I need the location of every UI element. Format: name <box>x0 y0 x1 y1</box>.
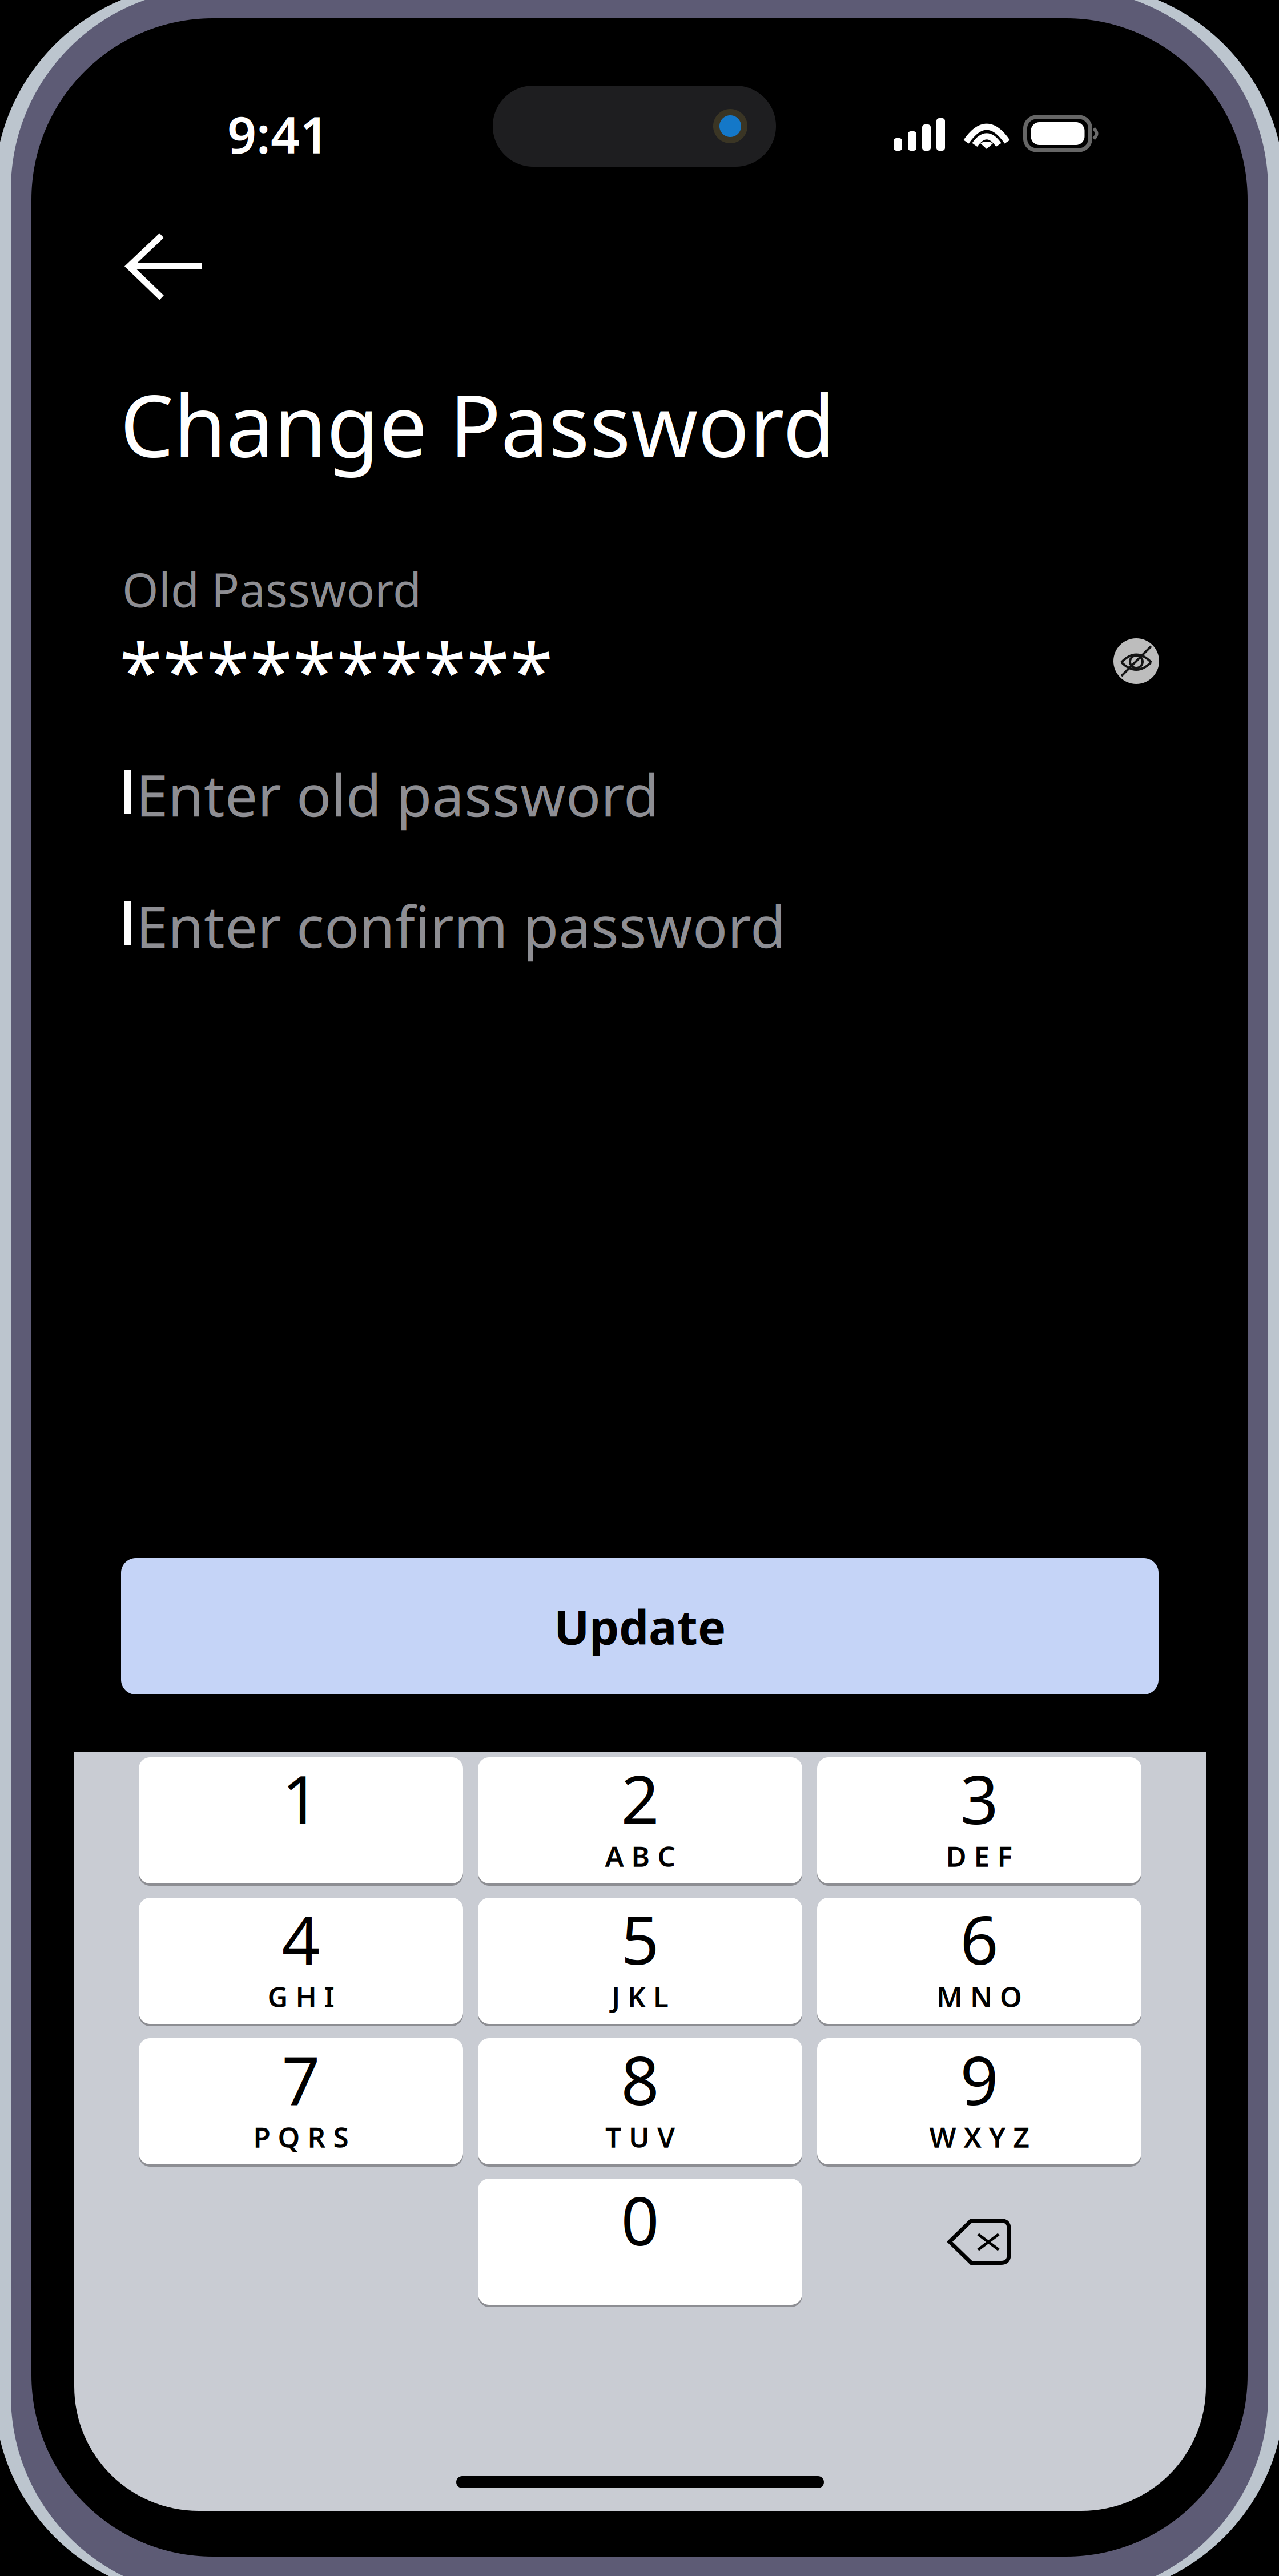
button[interactable]: 7 <box>139 2038 463 2164</box>
staticText: 9:41 <box>227 100 329 167</box>
staticText: Update <box>554 1595 726 1658</box>
button[interactable]: 0 <box>478 2179 802 2305</box>
staticText: T U V <box>605 2118 675 2155</box>
button[interactable]: 6 <box>817 1898 1141 2024</box>
button[interactable]: Enter confirm password <box>114 874 1085 971</box>
staticText: Change Password <box>120 368 835 481</box>
staticText: ********** <box>119 618 553 722</box>
staticText: G H I <box>268 1978 334 2015</box>
staticText: Old Password <box>122 558 421 620</box>
button[interactable]: 5 <box>478 1898 802 2024</box>
button[interactable]: 3 <box>817 1757 1141 1883</box>
staticText: 8 <box>621 2035 659 2123</box>
staticText: 3 <box>960 1754 998 1843</box>
staticText: A B C <box>605 1837 675 1874</box>
staticText: Enter confirm password <box>136 887 786 964</box>
staticText: P Q R S <box>253 2118 349 2155</box>
button[interactable]: 1 <box>139 1757 463 1883</box>
staticText: 6 <box>960 1894 998 1983</box>
button[interactable]: Update <box>121 1558 1159 1694</box>
button[interactable]: Back <box>118 230 212 304</box>
staticText: 2 <box>621 1754 659 1843</box>
button[interactable]: 9 <box>817 2038 1141 2164</box>
staticText: 9 <box>960 2035 998 2123</box>
button[interactable]: 2 <box>478 1757 802 1883</box>
staticText: 0 <box>621 2175 659 2264</box>
button[interactable]: 8 <box>478 2038 802 2164</box>
button[interactable]: Show password <box>1113 638 1159 684</box>
staticText: 5 <box>621 1894 659 1983</box>
staticText: J K L <box>612 1978 669 2015</box>
button[interactable]: Delete <box>817 2179 1141 2305</box>
staticText: M N O <box>936 1978 1022 2015</box>
button[interactable]: 4 <box>139 1898 463 2024</box>
button[interactable]: Enter old password <box>114 742 1085 839</box>
staticText: 1 <box>282 1754 320 1843</box>
staticText: Enter old password <box>136 756 659 833</box>
staticText: W X Y Z <box>929 2118 1029 2155</box>
staticText: 4 <box>282 1894 320 1983</box>
staticText: D E F <box>946 1837 1013 1874</box>
staticText: 7 <box>282 2035 320 2123</box>
